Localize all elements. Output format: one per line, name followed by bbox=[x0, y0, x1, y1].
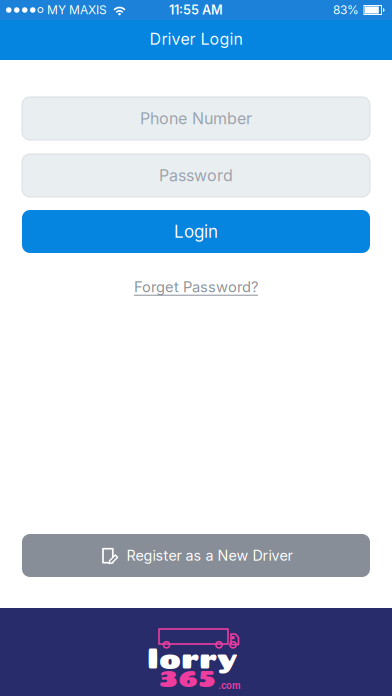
button[interactable]: Login bbox=[22, 210, 370, 253]
button[interactable]: Forget Password? bbox=[134, 278, 258, 296]
staticText: Login bbox=[174, 221, 218, 242]
staticText: 365 bbox=[159, 664, 216, 692]
button[interactable]: Phone Number bbox=[22, 97, 370, 140]
staticText: .com bbox=[218, 680, 241, 691]
staticText: lorry bbox=[147, 642, 237, 674]
staticText: Phone Number bbox=[140, 109, 252, 128]
button[interactable]: Password bbox=[22, 154, 370, 197]
staticText: 11:55 AM bbox=[169, 2, 223, 18]
button[interactable]: Register as a New Driver bbox=[22, 534, 370, 577]
staticText: Register as a New Driver bbox=[126, 547, 292, 564]
staticText: Password bbox=[159, 166, 233, 185]
staticText: Driver Login bbox=[149, 29, 242, 49]
staticText: MY MAXIS bbox=[47, 3, 107, 17]
staticText: Forget Password? bbox=[134, 278, 258, 296]
staticText: 83% bbox=[333, 3, 359, 17]
